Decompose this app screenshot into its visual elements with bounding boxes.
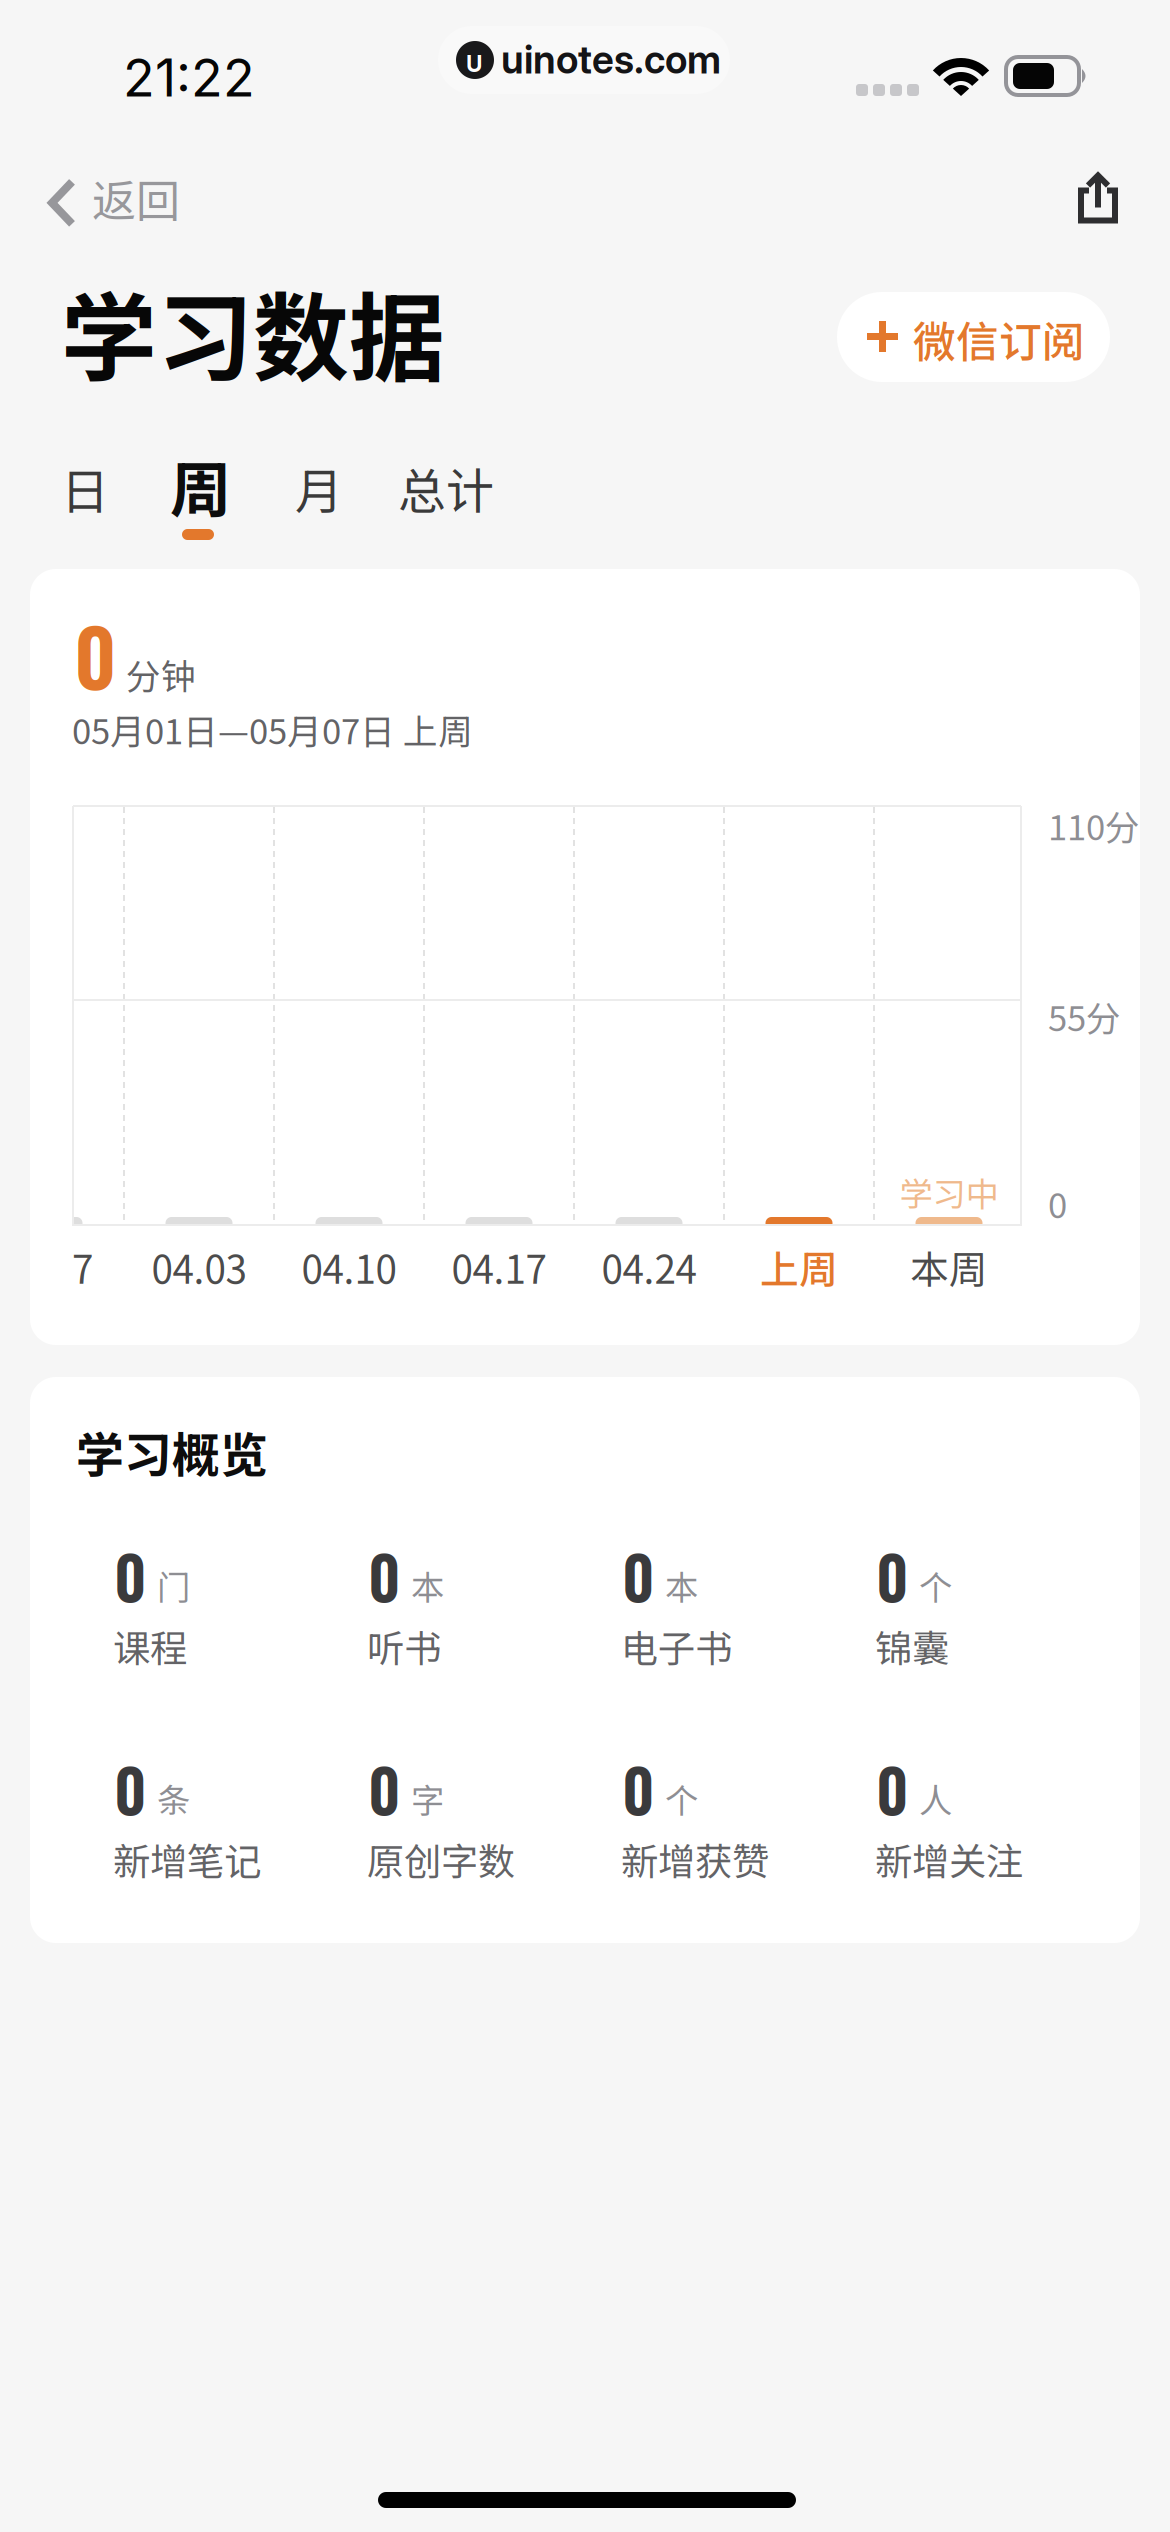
staticText: 0 (622, 1531, 655, 1620)
button[interactable]: 日 (61, 453, 117, 553)
button[interactable]: Share (1043, 148, 1153, 248)
staticText: 04.10 (301, 1239, 396, 1295)
staticText: 04.17 (451, 1239, 546, 1295)
staticText: 0 (622, 1744, 655, 1833)
staticText: 返回 (92, 166, 180, 230)
staticText: 日 (61, 453, 109, 522)
staticText: 微信订阅 (913, 308, 1085, 370)
staticText: 0 (114, 1744, 147, 1833)
staticText: 0 (876, 1744, 909, 1833)
staticText: 110分 (1048, 800, 1140, 850)
staticText: 上周 (760, 1239, 838, 1295)
button[interactable]: 周 (170, 441, 240, 541)
button[interactable]: 返回 (30, 152, 330, 248)
staticText: 总计 (398, 453, 494, 522)
staticText: 0 (74, 596, 117, 713)
staticText: 本周 (910, 1239, 988, 1295)
staticText: 7 (72, 1239, 93, 1295)
staticText: uinotes.com (501, 36, 721, 83)
staticText: 听书 (367, 1619, 441, 1673)
staticText: 人 (919, 1774, 952, 1822)
staticText: 学习概览 (76, 1417, 268, 1486)
staticText: U (466, 50, 482, 77)
staticText: 05月01日—05月07日 上周 (72, 704, 473, 754)
staticText: 0 (368, 1744, 401, 1833)
staticText: 04.03 (151, 1239, 246, 1295)
staticText: 周 (170, 441, 231, 530)
staticText: 本 (411, 1561, 444, 1609)
staticText: 本 (665, 1561, 698, 1609)
button[interactable]: 月 (295, 453, 351, 553)
staticText: 0 (114, 1531, 147, 1620)
button[interactable]: 微信订阅 (837, 292, 1110, 382)
staticText: 55分 (1048, 991, 1121, 1041)
staticText: 月 (295, 453, 343, 522)
staticText: 0 (1048, 1178, 1067, 1228)
staticText: 04.24 (601, 1239, 696, 1295)
staticText: 0 (368, 1531, 401, 1620)
staticText: 新增关注 (875, 1832, 1023, 1886)
staticText: 字 (411, 1774, 444, 1822)
staticText: 个 (665, 1774, 698, 1822)
staticText: 分钟 (126, 649, 196, 699)
staticText: 21:22 (123, 46, 255, 109)
staticText: 锦囊 (875, 1619, 949, 1673)
staticText: 课程 (113, 1619, 187, 1673)
button[interactable]: 总计 (398, 453, 502, 553)
staticText: 新增获赞 (621, 1832, 769, 1886)
staticText: 门 (157, 1561, 190, 1609)
staticText: 原创字数 (367, 1832, 515, 1886)
staticText: 个 (919, 1561, 952, 1609)
staticText: 学习中 (899, 1168, 998, 1216)
staticText: 条 (157, 1774, 190, 1822)
staticText: 新增笔记 (113, 1832, 261, 1886)
staticText: 0 (876, 1531, 909, 1620)
staticText: 电子书 (621, 1619, 732, 1673)
staticText: 学习数据 (61, 262, 445, 401)
